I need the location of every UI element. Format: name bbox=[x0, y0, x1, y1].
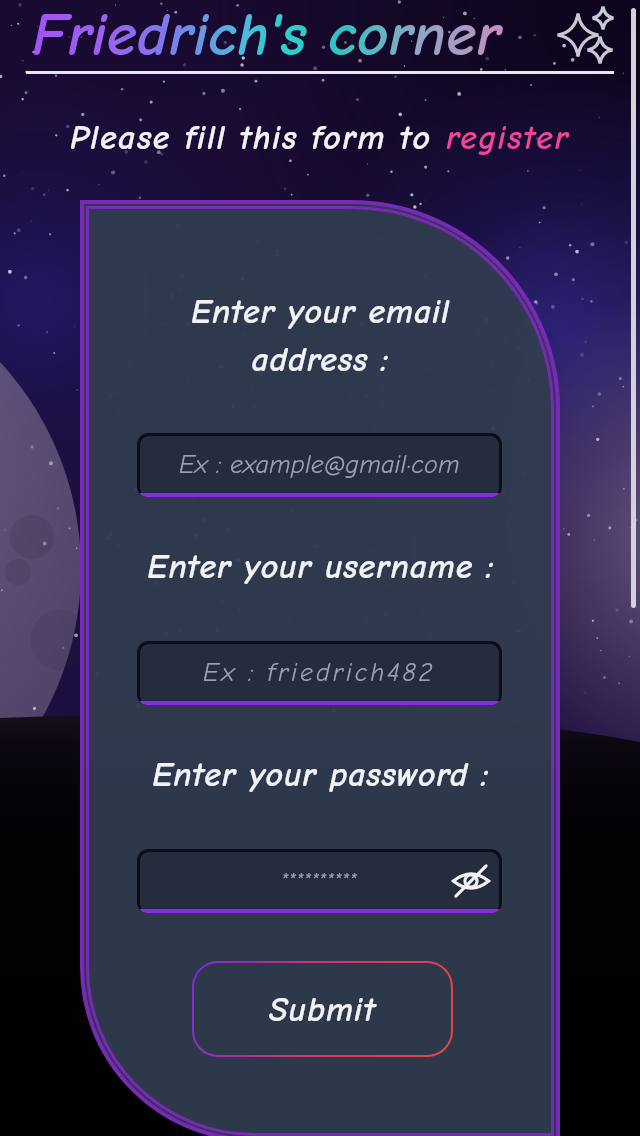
staticText: Enter your username : bbox=[147, 547, 494, 586]
staticText: Enter your password : bbox=[152, 755, 489, 794]
staticText: Submit bbox=[269, 990, 376, 1029]
staticText: Ex : example@gmail·com bbox=[179, 450, 460, 480]
staticText: Friedrich's corner bbox=[32, 0, 501, 70]
staticText: register bbox=[446, 118, 570, 157]
staticText: Ex : friedrich482 bbox=[203, 658, 436, 688]
button[interactable]: Show password bbox=[450, 860, 492, 902]
button[interactable]: Submit bbox=[192, 961, 453, 1057]
staticText: address : bbox=[251, 340, 389, 379]
button[interactable]: Ex : friedrich482 bbox=[137, 641, 502, 705]
button[interactable]: ********** bbox=[137, 849, 502, 913]
staticText: Enter your email bbox=[191, 292, 450, 331]
staticText: ********** bbox=[281, 870, 358, 892]
button[interactable]: Sparkles bbox=[550, 7, 606, 63]
button[interactable]: Ex : example@gmail·com bbox=[137, 433, 502, 497]
staticText: Please fill this form to bbox=[70, 118, 446, 157]
